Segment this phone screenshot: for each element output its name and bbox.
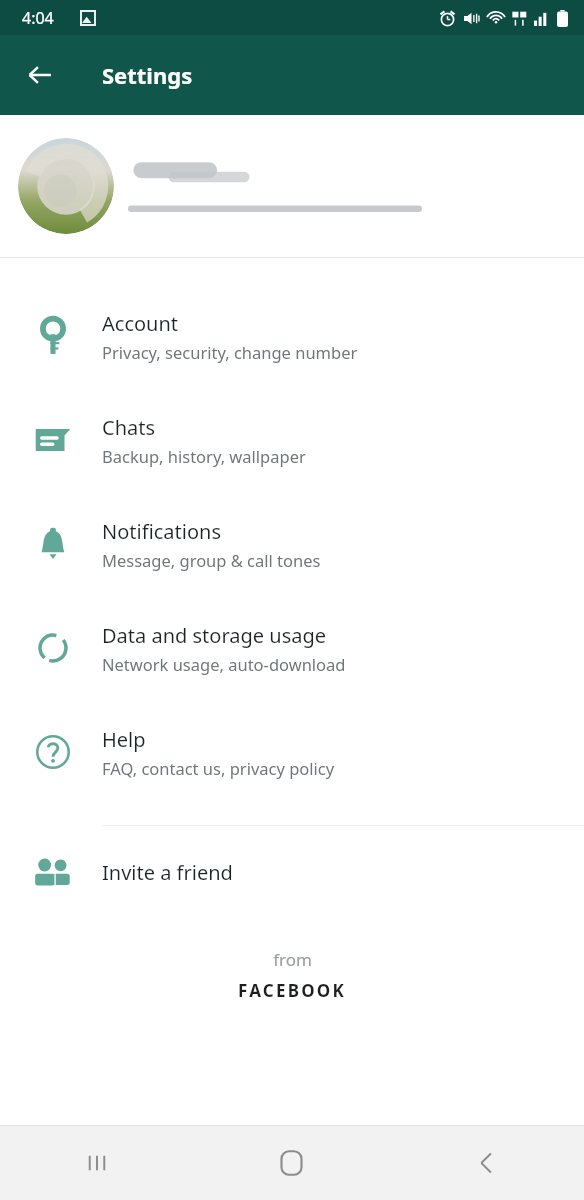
button[interactable]: Home <box>194 1126 389 1200</box>
staticText: Settings <box>102 60 193 90</box>
button[interactable]: Invite a friend <box>0 834 584 910</box>
staticText: FAQ, contact us, privacy policy <box>102 757 335 779</box>
staticText: from <box>273 948 312 971</box>
button[interactable] <box>0 115 584 257</box>
button[interactable]: Notifications <box>0 492 584 596</box>
staticText: Invite a friend <box>102 859 233 886</box>
button[interactable]: Back <box>389 1126 584 1200</box>
staticText: FACEBOOK <box>238 979 346 1002</box>
button[interactable]: Data and storage usage <box>0 596 584 700</box>
staticText: Account <box>102 310 179 337</box>
staticText: Notifications <box>102 518 221 545</box>
staticText: Backup, history, wallpaper <box>102 445 306 467</box>
button[interactable]: Help <box>0 700 584 804</box>
button[interactable]: Recents <box>0 1126 194 1200</box>
staticText: Help <box>102 726 146 753</box>
staticText: Network usage, auto-download <box>102 653 346 675</box>
staticText: 4:04 <box>22 7 54 29</box>
button[interactable]: Chats <box>0 388 584 492</box>
button[interactable]: Back <box>14 49 66 101</box>
staticText: Data and storage usage <box>102 622 327 649</box>
button[interactable]: Account <box>0 284 584 388</box>
staticText: Privacy, security, change number <box>102 341 358 363</box>
staticText: Chats <box>102 414 156 441</box>
staticText: Message, group & call tones <box>102 549 321 571</box>
